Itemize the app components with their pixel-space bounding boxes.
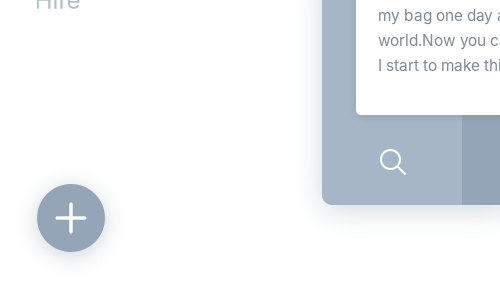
staticText: I start to make things	[378, 56, 500, 75]
button[interactable]: Add	[37, 184, 105, 252]
button[interactable]: Open note	[322, 0, 500, 205]
staticText: Hire	[34, 0, 80, 15]
staticText: world.Now you can do	[378, 31, 500, 50]
staticText: my bag one day and I	[378, 6, 500, 25]
